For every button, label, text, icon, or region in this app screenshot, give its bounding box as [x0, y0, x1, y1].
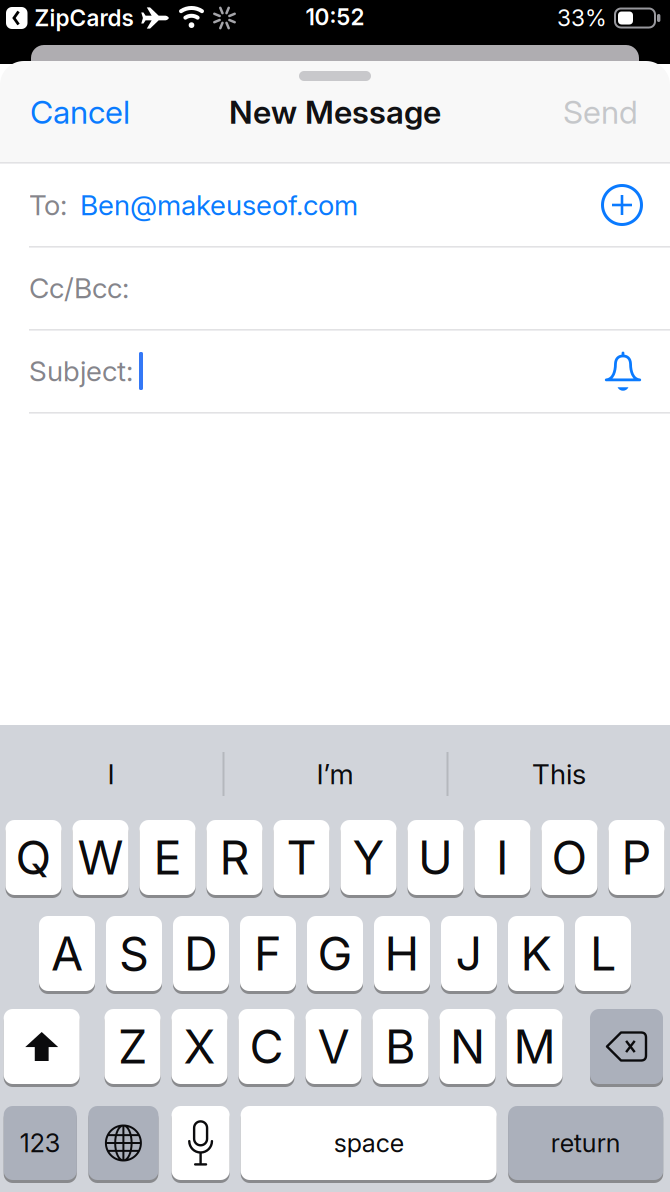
button[interactable]: I’m: [235, 742, 435, 806]
button[interactable]: Next Keyboard: [88, 1106, 158, 1182]
staticText: O: [551, 829, 587, 886]
button[interactable]: W: [72, 820, 128, 897]
staticText: Send: [563, 93, 638, 131]
staticText: M: [513, 1018, 555, 1075]
staticText: A: [51, 925, 83, 982]
staticText: G: [317, 925, 352, 982]
button[interactable]: return: [508, 1106, 663, 1182]
button[interactable]: To: Ben@makeuseof.com: [29, 164, 601, 246]
staticText: R: [219, 829, 249, 886]
button[interactable]: L: [575, 916, 631, 993]
staticText: I’m: [316, 757, 353, 791]
staticText: P: [621, 829, 651, 886]
staticText: X: [183, 1018, 215, 1075]
button[interactable]: T: [273, 820, 329, 897]
button[interactable]: Notify Me: [605, 352, 641, 390]
button[interactable]: R: [206, 820, 262, 897]
button[interactable]: B: [372, 1009, 428, 1086]
staticText: F: [254, 925, 282, 982]
staticText: I: [107, 757, 114, 791]
staticText: 10:52: [305, 3, 364, 31]
staticText: V: [317, 1018, 349, 1075]
button[interactable]: space: [241, 1106, 497, 1182]
staticText: N: [450, 1018, 485, 1075]
button[interactable]: Shift: [4, 1009, 80, 1086]
button[interactable]: G: [307, 916, 363, 993]
button[interactable]: This: [459, 742, 659, 806]
button[interactable]: D: [173, 916, 229, 993]
staticText: To:: [29, 188, 67, 222]
button[interactable]: Z: [104, 1009, 160, 1086]
staticText: C: [249, 1018, 283, 1075]
button[interactable]: Dictation: [172, 1106, 230, 1182]
staticText: S: [119, 925, 149, 982]
staticText: 123: [20, 1128, 61, 1158]
button[interactable]: J: [441, 916, 497, 993]
button[interactable]: I: [474, 820, 530, 897]
staticText: This: [532, 757, 586, 791]
staticText: return: [551, 1128, 621, 1158]
button[interactable]: N: [439, 1009, 495, 1086]
staticText: space: [334, 1128, 404, 1158]
staticText: Ben@makeuseof.com: [80, 188, 358, 222]
button[interactable]: Send: [563, 93, 638, 131]
button[interactable]: S: [106, 916, 162, 993]
button[interactable]: Cancel: [30, 93, 130, 131]
staticText: Z: [118, 1018, 147, 1075]
staticText: 33%: [557, 4, 607, 32]
button[interactable]: M: [506, 1009, 562, 1086]
button[interactable]: Delete: [590, 1009, 663, 1086]
staticText: New Message: [229, 93, 441, 131]
staticText: K: [520, 925, 551, 982]
button[interactable]: Add Contact: [601, 184, 643, 226]
staticText: U: [418, 829, 453, 886]
button[interactable]: E: [139, 820, 195, 897]
button[interactable]: V: [305, 1009, 361, 1086]
staticText: H: [384, 925, 419, 982]
staticText: Cancel: [30, 93, 130, 131]
button[interactable]: 123: [4, 1106, 77, 1182]
staticText: Cc/Bcc:: [29, 271, 129, 305]
button[interactable]: K: [508, 916, 564, 993]
staticText: E: [153, 829, 181, 886]
button[interactable]: Back to ZipCards: [6, 7, 27, 29]
button[interactable]: A: [39, 916, 95, 993]
button[interactable]: X: [171, 1009, 227, 1086]
staticText: I: [496, 829, 509, 886]
button[interactable]: H: [374, 916, 430, 993]
staticText: T: [286, 829, 316, 886]
staticText: Subject:: [29, 354, 133, 388]
staticText: B: [385, 1018, 416, 1075]
button[interactable]: Q: [5, 820, 61, 897]
button[interactable]: O: [541, 820, 597, 897]
staticText: Y: [352, 829, 384, 886]
staticText: W: [77, 829, 123, 886]
button[interactable]: C: [238, 1009, 294, 1086]
button[interactable]: Y: [340, 820, 396, 897]
button[interactable]: F: [240, 916, 296, 993]
button[interactable]: P: [608, 820, 664, 897]
button[interactable]: U: [407, 820, 463, 897]
staticText: Q: [15, 829, 51, 886]
staticText: J: [455, 925, 482, 982]
button[interactable]: Cc/Bcc:: [0, 247, 670, 329]
button[interactable]: Subject: [29, 330, 605, 411]
staticText: ZipCards: [34, 4, 133, 32]
staticText: D: [184, 925, 218, 982]
button[interactable]: I: [11, 742, 211, 806]
staticText: L: [590, 925, 616, 982]
